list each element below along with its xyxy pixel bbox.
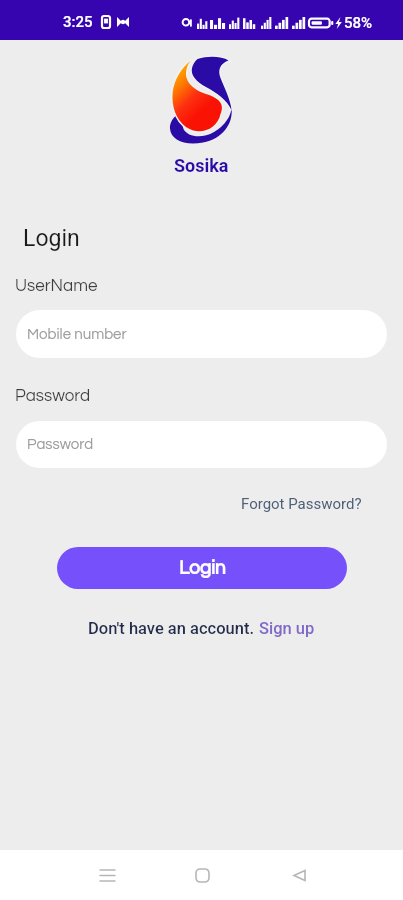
- staticText: Don't have an account.: [88, 619, 259, 638]
- button[interactable]: Mobile number: [16, 310, 387, 358]
- staticText: Forgot Password?: [241, 495, 362, 513]
- button[interactable]: Home: [177, 850, 228, 900]
- staticText: Password: [27, 437, 94, 452]
- button[interactable]: Back: [274, 850, 325, 900]
- button[interactable]: Login: [57, 547, 347, 589]
- staticText: Login: [179, 558, 226, 578]
- staticText: Mobile number: [27, 327, 127, 342]
- staticText: Sosika: [174, 155, 229, 176]
- staticText: 58%: [344, 14, 373, 32]
- staticText: 3:25: [63, 13, 93, 31]
- button[interactable]: Sign up: [259, 619, 315, 638]
- button[interactable]: Password: [16, 421, 387, 468]
- staticText: UserName: [15, 277, 98, 295]
- staticText: Sign up: [259, 619, 315, 638]
- staticText: Password: [15, 387, 91, 405]
- button[interactable]: Forgot Password?: [237, 491, 366, 517]
- button[interactable]: Recent apps: [82, 850, 133, 900]
- staticText: Login: [23, 225, 80, 252]
